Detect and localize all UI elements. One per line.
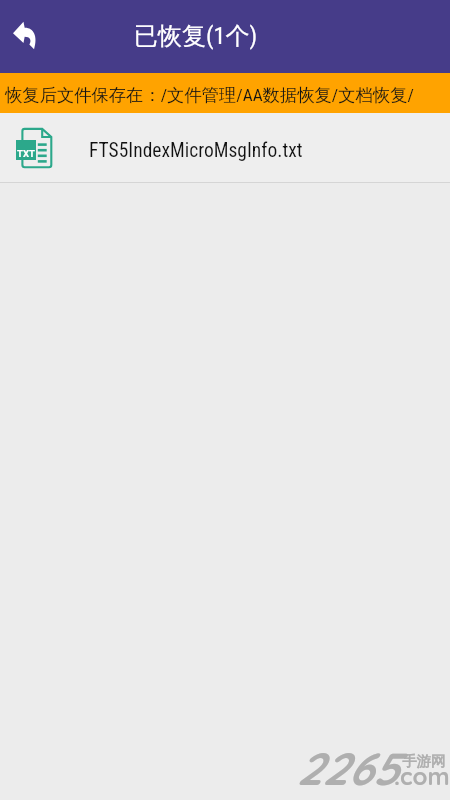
button[interactable]: Back xyxy=(2,13,50,61)
staticText: TXT xyxy=(17,148,35,159)
staticText: 恢复后文件保存在：/文件管理/AA数据恢复/文档恢复/ xyxy=(5,84,414,106)
staticText: 已恢复(1个) xyxy=(134,21,258,51)
staticText: FTS5IndexMicroMsgInfo.txt xyxy=(89,139,303,162)
staticText: 手游网 xyxy=(402,752,446,770)
button[interactable]: TXT xyxy=(0,113,450,182)
staticText: .com xyxy=(394,761,450,791)
staticText: 2265 xyxy=(296,740,399,796)
